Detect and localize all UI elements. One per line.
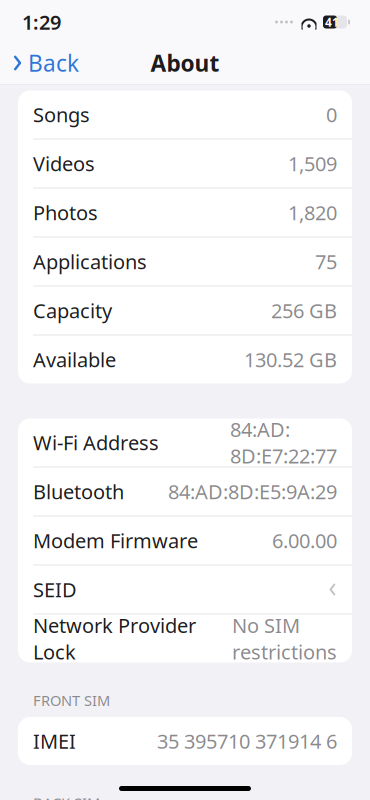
staticText: No SIM restrictions	[232, 612, 337, 665]
staticText: 0	[326, 101, 337, 128]
button[interactable]: Available	[18, 335, 352, 383]
staticText: 130.52 GB	[244, 346, 337, 373]
staticText: BACK SIM	[33, 793, 100, 800]
staticText: Network Provider Lock	[33, 612, 196, 665]
staticText: Capacity	[33, 297, 112, 324]
staticText: Applications	[33, 248, 147, 275]
staticText: Videos	[33, 150, 95, 177]
staticText: SEID	[33, 576, 77, 603]
button[interactable]: Back	[0, 44, 87, 82]
staticText: Photos	[33, 199, 98, 226]
staticText: 84:AD:8D:E5:9A:29	[168, 478, 337, 505]
button[interactable]: Wi-Fi Address	[18, 418, 352, 466]
staticText: 35 395710 371914 6	[157, 728, 337, 754]
staticText: 1,820	[288, 199, 337, 226]
staticText: Bluetooth	[33, 478, 124, 505]
button[interactable]: Capacity	[18, 286, 352, 334]
button[interactable]: Photos	[18, 188, 352, 236]
staticText: Modem Firmware	[33, 527, 198, 554]
staticText: 84:AD:8D:E7:22:77	[230, 416, 337, 469]
button[interactable]: SEID	[18, 565, 352, 613]
staticText: 1,509	[288, 150, 337, 177]
staticText: 1:29	[22, 9, 61, 35]
button[interactable]: Applications	[18, 237, 352, 285]
staticText: Available	[33, 346, 116, 373]
button[interactable]: Songs	[18, 90, 352, 138]
button[interactable]: Modem Firmware	[18, 516, 352, 564]
button[interactable]: Network Provider Lock	[18, 614, 352, 662]
staticText: 256 GB	[271, 297, 337, 324]
staticText: Wi-Fi Address	[33, 429, 159, 456]
staticText: Songs	[33, 101, 90, 128]
staticText: About	[150, 48, 219, 78]
staticText: 75	[315, 248, 337, 275]
staticText: Back	[28, 48, 79, 78]
button[interactable]: Videos	[18, 139, 352, 187]
staticText: 41	[325, 14, 339, 30]
staticText: IMEI	[33, 728, 76, 754]
button[interactable]: Bluetooth	[18, 467, 352, 515]
staticText: FRONT SIM	[33, 690, 110, 710]
button[interactable]: IMEI	[18, 717, 352, 765]
staticText: 6.00.00	[272, 527, 337, 554]
